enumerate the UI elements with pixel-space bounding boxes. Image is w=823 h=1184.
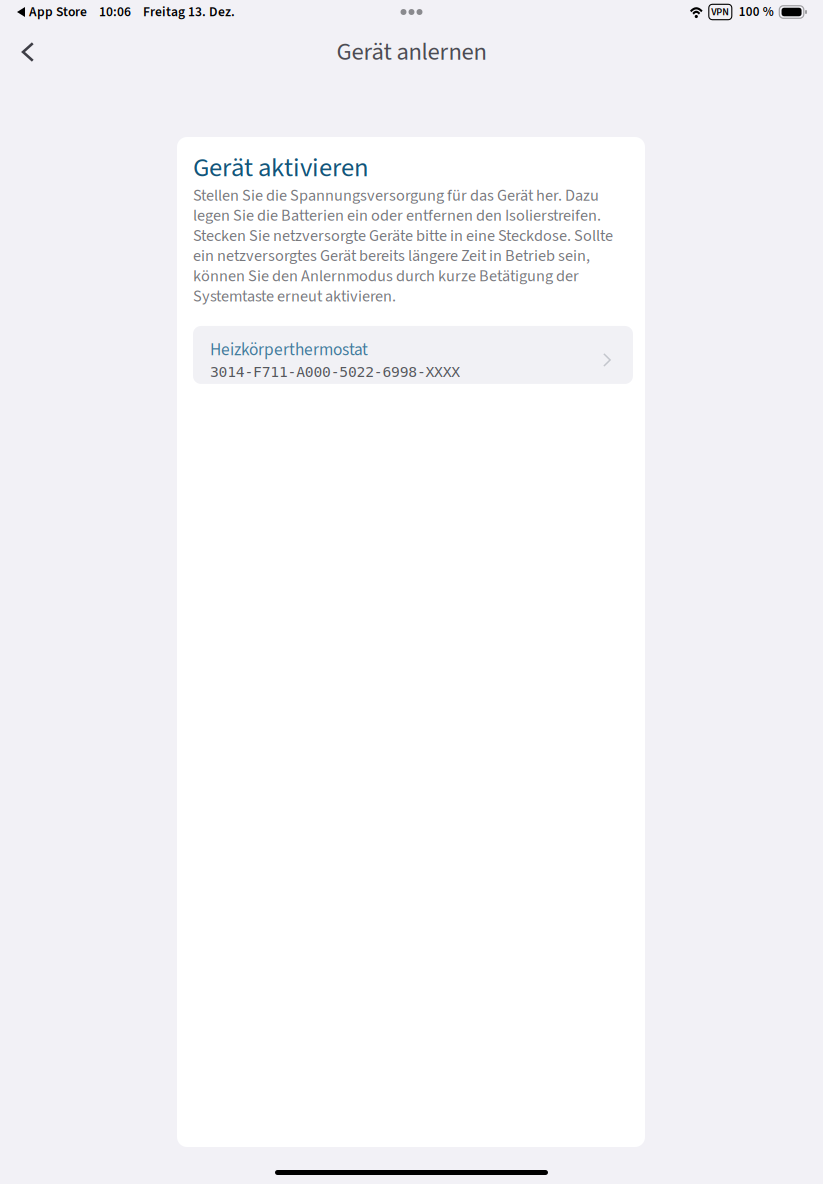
staticText: Stellen Sie die Spannungsversorgung für … [193, 184, 613, 308]
button[interactable]: Zurück [6, 22, 50, 74]
staticText: App Store [29, 2, 87, 22]
staticText: Gerät aktivieren [193, 149, 369, 187]
staticText: 10:06 [99, 2, 131, 22]
button[interactable]: App Store [17, 2, 87, 22]
staticText: Freitag 13. Dez. [143, 2, 235, 22]
button[interactable]: Heizkörperthermostat [193, 326, 633, 384]
staticText: Gerät anlernen [336, 34, 486, 69]
staticText: 3014-F711-A000-5022-6998-XXXX [210, 363, 460, 380]
staticText: VPN [711, 5, 729, 19]
staticText: Heizkörperthermostat [210, 338, 368, 362]
staticText: 100 % [739, 3, 774, 21]
